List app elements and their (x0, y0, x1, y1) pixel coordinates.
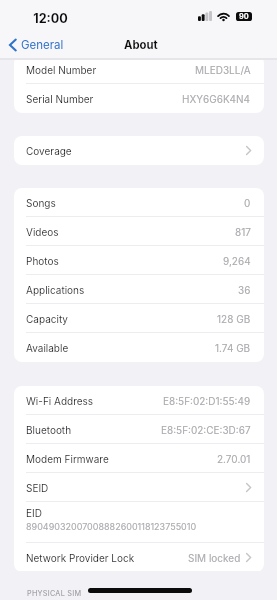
staticText: PHYSICAL SIM (27, 589, 82, 598)
button[interactable]: Available (14, 333, 264, 362)
button[interactable]: Capacity (14, 304, 264, 333)
button[interactable]: Coverage (14, 136, 264, 165)
staticText: 89049032007008882600118123755010 (26, 521, 197, 532)
staticText: Modem Firmware (26, 453, 109, 465)
staticText: Serial Number (26, 93, 94, 105)
staticText: SIM locked (188, 552, 241, 564)
staticText: Videos (26, 226, 59, 238)
staticText: Bluetooth (26, 424, 72, 436)
staticText: Coverage (26, 145, 72, 157)
staticText: Wi-Fi Address (26, 395, 94, 407)
button[interactable]: Applications (14, 275, 264, 304)
staticText: Model Number (26, 64, 97, 76)
staticText: Applications (26, 284, 85, 296)
staticText: 9,264 (223, 255, 251, 267)
staticText: 0 (244, 197, 251, 209)
button[interactable]: Songs (14, 188, 264, 217)
button[interactable]: Videos (14, 217, 264, 246)
staticText: Songs (26, 197, 56, 209)
staticText: EID (26, 507, 42, 519)
staticText: Available (26, 342, 69, 354)
staticText: 36 (238, 284, 251, 296)
button[interactable]: Serial Number (14, 84, 264, 113)
button[interactable]: Bluetooth (14, 415, 264, 444)
staticText: MLED3LL/A (195, 64, 251, 76)
staticText: 12:00 (33, 11, 68, 26)
button[interactable]: EID (14, 502, 264, 543)
staticText: 2.70.01 (217, 453, 251, 465)
staticText: General (21, 38, 64, 52)
staticText: E8:5F:02:D1:55:49 (163, 395, 251, 407)
staticText: 128 GB (217, 313, 251, 325)
staticText: 1.74 GB (215, 342, 251, 354)
button[interactable]: Photos (14, 246, 264, 275)
button[interactable]: Model Number (14, 55, 264, 84)
staticText: About (124, 38, 158, 52)
staticText: E8:5F:02:CE:3D:67 (161, 424, 251, 436)
staticText: Network Provider Lock (26, 552, 135, 564)
button[interactable]: Wi-Fi Address (14, 386, 264, 415)
staticText: Capacity (26, 313, 68, 325)
staticText: SEID (26, 482, 49, 494)
staticText: Photos (26, 255, 59, 267)
button[interactable]: SEID (14, 473, 264, 502)
button[interactable]: Network Provider Lock (14, 543, 264, 572)
staticText: HXY6G6K4N4 (182, 93, 251, 105)
staticText: 90 (239, 12, 249, 21)
button[interactable]: Modem Firmware (14, 444, 264, 473)
staticText: 817 (235, 226, 251, 238)
button[interactable]: General (0, 34, 70, 56)
